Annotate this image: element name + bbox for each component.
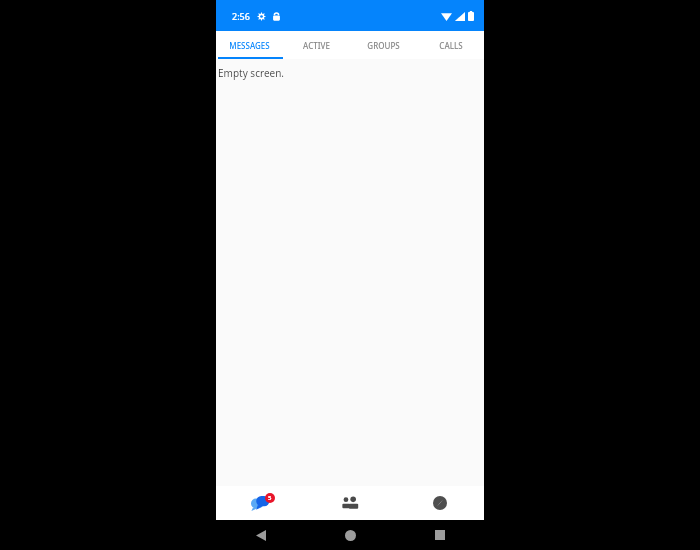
button[interactable]: Back <box>216 520 306 550</box>
staticText: MESSAGES <box>229 40 270 51</box>
staticText: 5 <box>268 494 272 502</box>
button[interactable]: Messages, 5 unread <box>216 486 306 520</box>
staticText: Empty screen. <box>218 66 285 80</box>
staticText: ACTIVE <box>303 40 330 51</box>
staticText: 2:56 <box>232 10 250 22</box>
staticText: CALLS <box>439 40 463 51</box>
button[interactable]: Explore <box>395 486 484 520</box>
button[interactable]: Groups <box>306 486 395 520</box>
button[interactable]: Home <box>306 520 395 550</box>
button[interactable]: GROUPS <box>350 31 417 59</box>
button[interactable]: CALLS <box>417 31 484 59</box>
button[interactable]: MESSAGES <box>216 31 283 59</box>
button[interactable]: ACTIVE <box>283 31 350 59</box>
button[interactable]: Recents <box>395 520 484 550</box>
staticText: GROUPS <box>367 40 400 51</box>
